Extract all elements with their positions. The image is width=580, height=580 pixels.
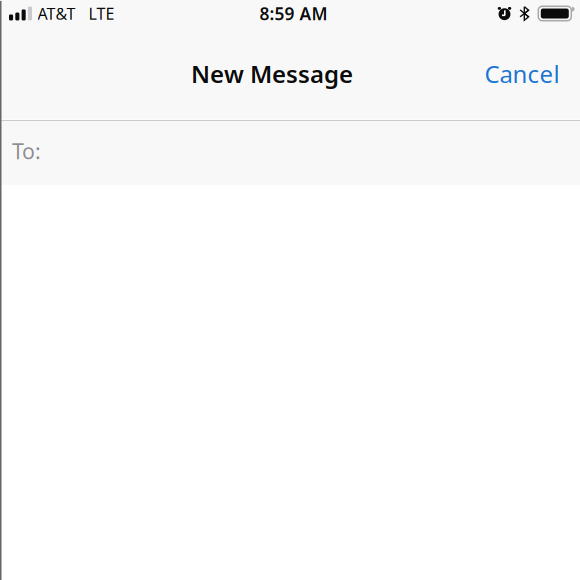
staticText: To: [12,137,41,165]
staticText: LTE [89,3,115,24]
staticText: AT&T [38,3,76,24]
staticText: New Message [191,58,353,90]
button[interactable]: Cancel [472,46,571,100]
staticText: Cancel [484,58,559,90]
staticText: 8:59 AM [259,2,327,25]
button[interactable]: To: [0,121,580,185]
